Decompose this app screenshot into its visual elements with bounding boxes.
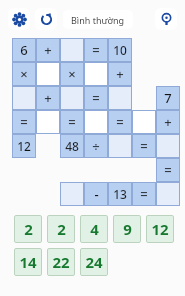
staticText: + — [164, 113, 172, 131]
button[interactable]: = — [84, 86, 108, 110]
staticText: 12 — [151, 219, 169, 239]
staticText: + — [44, 41, 52, 59]
button[interactable]: 2 — [14, 215, 42, 243]
button[interactable]: Settings — [8, 8, 30, 30]
staticText: × — [20, 65, 28, 83]
button[interactable]: ÷ — [84, 134, 108, 158]
button[interactable]: = — [132, 134, 156, 158]
button[interactable]: × — [60, 62, 84, 86]
button[interactable]: = — [12, 110, 36, 134]
staticText: Bình thường — [71, 14, 125, 26]
button[interactable]: 13 — [108, 182, 132, 206]
staticText: 14 — [19, 252, 37, 272]
staticText: 9 — [123, 219, 132, 239]
staticText: 24 — [85, 252, 103, 272]
button[interactable]: 7 — [156, 86, 180, 110]
button[interactable]: 12 — [12, 134, 36, 158]
button[interactable]: 22 — [47, 248, 75, 276]
button[interactable]: 10 — [108, 38, 132, 62]
button[interactable]: = — [60, 110, 84, 134]
button[interactable]: = — [132, 182, 156, 206]
staticText: - — [94, 185, 99, 203]
button[interactable]: 9 — [113, 215, 141, 243]
button[interactable]: + — [108, 62, 132, 86]
button[interactable] — [132, 110, 156, 134]
staticText: = — [116, 113, 124, 131]
button[interactable]: 48 — [60, 134, 84, 158]
button[interactable] — [84, 110, 108, 134]
staticText: 4 — [90, 219, 99, 239]
button[interactable]: = — [156, 158, 180, 182]
button[interactable]: = — [84, 38, 108, 62]
button[interactable]: - — [84, 182, 108, 206]
button[interactable] — [108, 134, 132, 158]
button[interactable] — [60, 86, 84, 110]
button[interactable]: 2 — [47, 215, 75, 243]
staticText: 2 — [24, 219, 33, 239]
button[interactable] — [36, 62, 60, 86]
button[interactable]: Restart — [35, 8, 57, 30]
staticText: = — [20, 113, 28, 131]
button[interactable]: + — [36, 86, 60, 110]
button[interactable]: + — [36, 38, 60, 62]
staticText: 22 — [52, 252, 70, 272]
staticText: 13 — [113, 186, 127, 202]
staticText: + — [44, 89, 52, 107]
button[interactable]: 4 — [80, 215, 108, 243]
button[interactable] — [156, 182, 180, 206]
button[interactable] — [12, 86, 36, 110]
staticText: 6 — [20, 41, 28, 59]
staticText: 12 — [17, 138, 31, 154]
button[interactable]: 14 — [14, 248, 42, 276]
button[interactable]: 12 — [146, 215, 174, 243]
button[interactable]: × — [12, 62, 36, 86]
staticText: = — [68, 113, 76, 131]
staticText: = — [140, 185, 148, 203]
button[interactable] — [36, 110, 60, 134]
staticText: = — [140, 137, 148, 155]
button[interactable]: Hint — [155, 8, 177, 30]
button[interactable]: = — [108, 110, 132, 134]
button[interactable]: 6 — [12, 38, 36, 62]
button[interactable]: + — [156, 110, 180, 134]
button[interactable] — [84, 62, 108, 86]
staticText: ÷ — [92, 137, 100, 155]
button[interactable] — [60, 38, 84, 62]
staticText: = — [92, 41, 100, 59]
staticText: 48 — [65, 138, 79, 154]
staticText: + — [116, 65, 124, 83]
button[interactable] — [108, 86, 132, 110]
button[interactable] — [60, 182, 84, 206]
staticText: = — [164, 161, 172, 179]
button[interactable]: 24 — [80, 248, 108, 276]
staticText: 7 — [164, 89, 172, 107]
staticText: × — [68, 65, 76, 83]
button[interactable] — [156, 134, 180, 158]
staticText: 2 — [57, 219, 66, 239]
staticText: 10 — [113, 42, 127, 58]
staticText: = — [92, 89, 100, 107]
button[interactable]: Bình thường — [63, 10, 133, 29]
